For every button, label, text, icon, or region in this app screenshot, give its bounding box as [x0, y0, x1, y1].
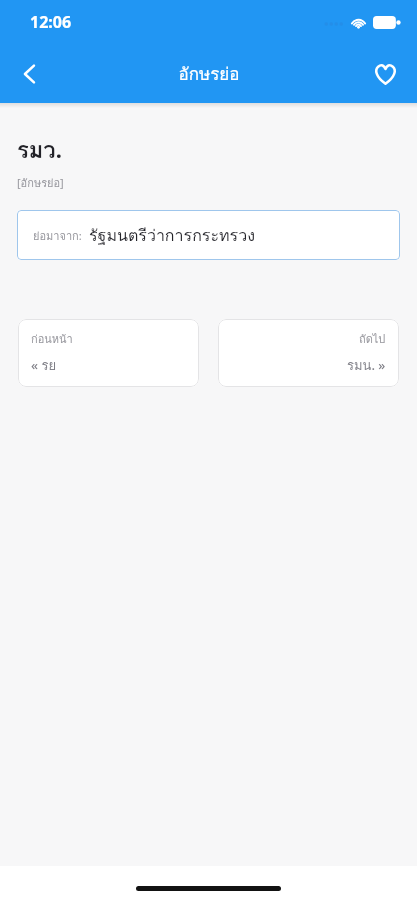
staticText: อักษรย่อ: [178, 60, 240, 87]
staticText: ก่อนหน้า: [31, 330, 73, 347]
staticText: รัฐมนตรีว่าการกระทรวง: [89, 223, 255, 248]
staticText: « รย: [31, 355, 56, 376]
staticText: ย่อมาจาก:: [33, 227, 82, 244]
staticText: [อักษรย่อ]: [17, 174, 64, 191]
staticText: ถัดไป: [359, 330, 386, 347]
button[interactable]: ก่อนหน้า: [18, 319, 199, 387]
staticText: รมว.: [17, 133, 62, 168]
button[interactable]: ย่อมาจาก:: [17, 210, 400, 260]
button[interactable]: Favorite: [363, 52, 407, 96]
staticText: รมน. »: [347, 355, 386, 376]
button[interactable]: ถัดไป: [218, 319, 399, 387]
button[interactable]: Back: [8, 52, 52, 96]
staticText: 12:06: [30, 11, 72, 33]
